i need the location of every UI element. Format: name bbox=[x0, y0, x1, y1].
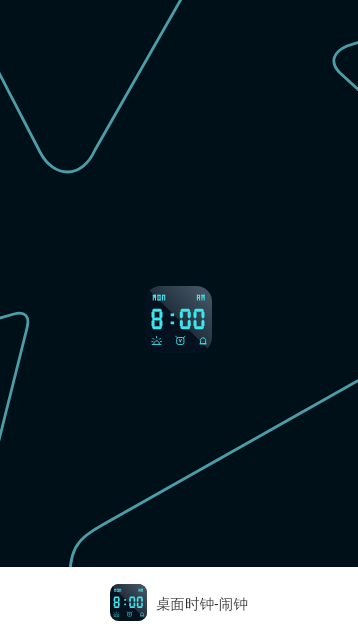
staticText: 桌面时钟-闹钟 bbox=[156, 593, 248, 613]
button[interactable]: 桌面时钟-闹钟 bbox=[0, 567, 358, 638]
button[interactable]: Desk Clock app icon bbox=[145, 286, 212, 353]
